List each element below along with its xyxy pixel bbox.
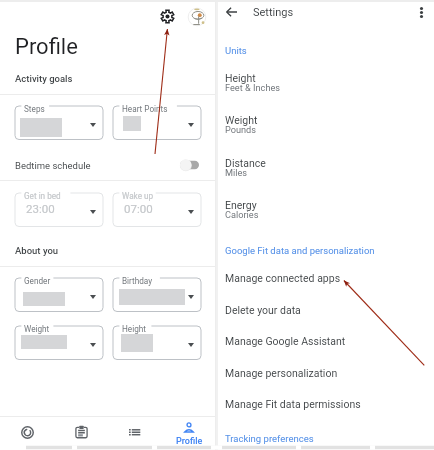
button[interactable] <box>0 152 215 178</box>
button[interactable]: Distance <box>219 151 434 189</box>
button[interactable]: More options <box>410 1 432 23</box>
button[interactable]: Delete your data <box>219 298 434 326</box>
staticText: Height <box>225 72 256 84</box>
button[interactable]: Birthday <box>113 272 201 312</box>
staticText: Distance <box>225 157 266 169</box>
staticText: Wake up <box>122 191 154 201</box>
staticText: Manage personalization <box>225 367 338 379</box>
staticText: Weight <box>24 324 50 334</box>
button[interactable]: Weight <box>15 320 103 360</box>
staticText: 23:00 <box>26 202 55 215</box>
button[interactable]: Weight <box>219 108 434 146</box>
staticText: Get in bed <box>24 191 61 201</box>
staticText: Heart Points <box>122 104 168 114</box>
staticText: Feet & Inches <box>225 82 281 93</box>
button[interactable]: Back <box>220 1 242 23</box>
staticText: Google Fit data and personalization <box>225 245 375 256</box>
staticText: Profile <box>15 34 78 60</box>
staticText: Calories <box>225 209 259 220</box>
staticText: Energy <box>225 199 257 211</box>
staticText: Manage connected apps <box>225 272 341 284</box>
button[interactable]: Profile <box>161 417 215 450</box>
staticText: Profile <box>176 436 203 447</box>
button[interactable]: Browse <box>108 417 162 450</box>
button[interactable]: Height <box>219 66 434 104</box>
button[interactable]: Manage personalization <box>219 361 434 389</box>
button[interactable]: Energy <box>219 193 434 231</box>
button[interactable]: Manage Google Assistant <box>219 329 434 357</box>
staticText: Tracking preferences <box>225 433 314 444</box>
staticText: Miles <box>225 167 248 178</box>
staticText: Delete your data <box>225 304 301 316</box>
button[interactable]: Steps <box>15 100 103 140</box>
staticText: Manage Google Assistant <box>225 335 346 347</box>
staticText: Units <box>225 45 247 56</box>
staticText: Steps <box>24 104 45 114</box>
staticText: Settings <box>253 6 294 19</box>
button[interactable]: Get in bed <box>15 187 103 227</box>
button[interactable]: Gender <box>15 272 103 312</box>
staticText: Manage Fit data permissions <box>225 398 361 410</box>
button[interactable]: Units <box>219 39 434 61</box>
button[interactable]: Tracking preferences <box>219 427 434 449</box>
staticText: Birthday <box>122 276 153 286</box>
button[interactable]: Google Fit data and personalization <box>219 239 434 261</box>
staticText: Weight <box>225 114 258 126</box>
button[interactable]: Heart Points <box>113 100 201 140</box>
button[interactable]: Height <box>113 320 201 360</box>
staticText: Height <box>122 324 146 334</box>
staticText: Bedtime schedule <box>15 160 91 171</box>
staticText: Pounds <box>225 124 257 135</box>
button[interactable]: Settings <box>155 4 180 29</box>
button[interactable]: Wake up <box>113 187 201 227</box>
staticText: 07:00 <box>124 202 153 215</box>
staticText: Activity goals <box>15 73 73 84</box>
button[interactable]: Journal <box>54 417 108 450</box>
button[interactable]: Manage connected apps <box>219 266 434 294</box>
staticText: Gender <box>24 276 51 286</box>
button[interactable]: Account <box>184 4 209 29</box>
button[interactable]: Home <box>0 417 54 450</box>
button[interactable]: Manage Fit data permissions <box>219 392 434 420</box>
staticText: About you <box>15 245 59 256</box>
